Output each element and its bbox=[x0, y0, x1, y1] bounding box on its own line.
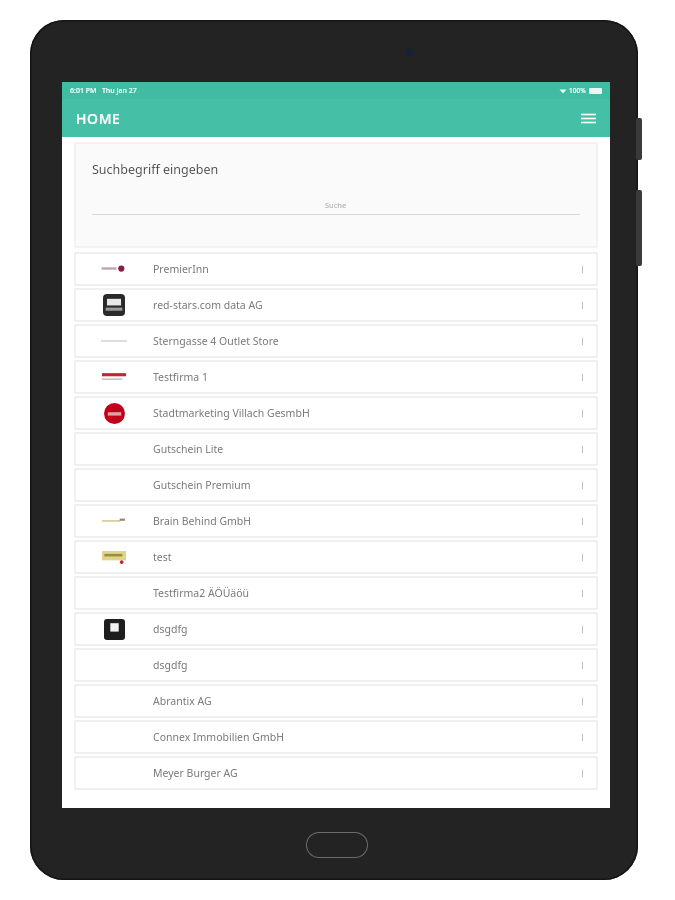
staticText: Brain Behind GmbH bbox=[153, 514, 252, 528]
staticText: Stadtmarketing Villach GesmbH bbox=[153, 406, 310, 420]
button[interactable]: Abrantix AG bbox=[75, 685, 597, 717]
button[interactable]: dsgdfg bbox=[75, 649, 597, 681]
staticText: HOME bbox=[76, 109, 121, 128]
staticText: red-stars.com data AG bbox=[153, 298, 263, 312]
button[interactable]: Connex Immobilien GmbH bbox=[75, 721, 597, 753]
staticText: Gutschein Premium bbox=[153, 478, 251, 492]
button[interactable]: Brain Behind GmbH bbox=[75, 505, 597, 537]
staticText: dsgdfg bbox=[153, 622, 188, 636]
staticText: dsgdfg bbox=[153, 658, 188, 672]
other: Home bbox=[306, 832, 368, 858]
button[interactable]: Suchbegriff eingeben bbox=[75, 143, 597, 247]
staticText: 100% bbox=[569, 86, 586, 95]
button[interactable]: Testfirma 1 bbox=[75, 361, 597, 393]
staticText: Sterngasse 4 Outlet Store bbox=[153, 334, 279, 348]
staticText: Suche bbox=[325, 200, 347, 210]
button[interactable]: Gutschein Premium bbox=[75, 469, 597, 501]
button[interactable]: PremierInn bbox=[75, 253, 597, 285]
button[interactable]: test bbox=[75, 541, 597, 573]
staticText: Connex Immobilien GmbH bbox=[153, 730, 284, 744]
button[interactable]: Menu bbox=[574, 104, 602, 132]
button[interactable]: Stadtmarketing Villach GesmbH bbox=[75, 397, 597, 429]
staticText: test bbox=[153, 550, 172, 564]
button[interactable]: dsgdfg bbox=[75, 613, 597, 645]
button[interactable]: Gutschein Lite bbox=[75, 433, 597, 465]
staticText: Gutschein Lite bbox=[153, 442, 224, 456]
staticText: PremierInn bbox=[153, 262, 209, 276]
staticText: Meyer Burger AG bbox=[153, 766, 238, 780]
staticText: 6:01 PM Thu Jan 27 bbox=[70, 86, 137, 96]
button[interactable]: Testfirma2 ÄÖÜäöü bbox=[75, 577, 597, 609]
staticText: Testfirma2 ÄÖÜäöü bbox=[153, 586, 250, 600]
staticText: Abrantix AG bbox=[153, 694, 212, 708]
button[interactable]: red-stars.com data AG bbox=[75, 289, 597, 321]
staticText: Testfirma 1 bbox=[153, 370, 208, 384]
staticText: Suchbegriff eingeben bbox=[92, 161, 219, 178]
button[interactable]: Meyer Burger AG bbox=[75, 757, 597, 789]
button[interactable]: Sterngasse 4 Outlet Store bbox=[75, 325, 597, 357]
